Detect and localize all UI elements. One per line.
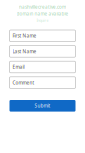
button[interactable]: Submit <box>9 100 75 112</box>
staticText: nashvillecreative.com <box>19 4 66 10</box>
staticText: Inquire <box>36 17 48 23</box>
staticText: Last Name <box>12 48 36 55</box>
staticText: First Name <box>12 33 36 39</box>
staticText: Submit <box>34 103 50 109</box>
staticText: domain name available <box>16 11 68 17</box>
staticText: Comment <box>12 79 34 86</box>
staticText: Email <box>12 64 24 70</box>
